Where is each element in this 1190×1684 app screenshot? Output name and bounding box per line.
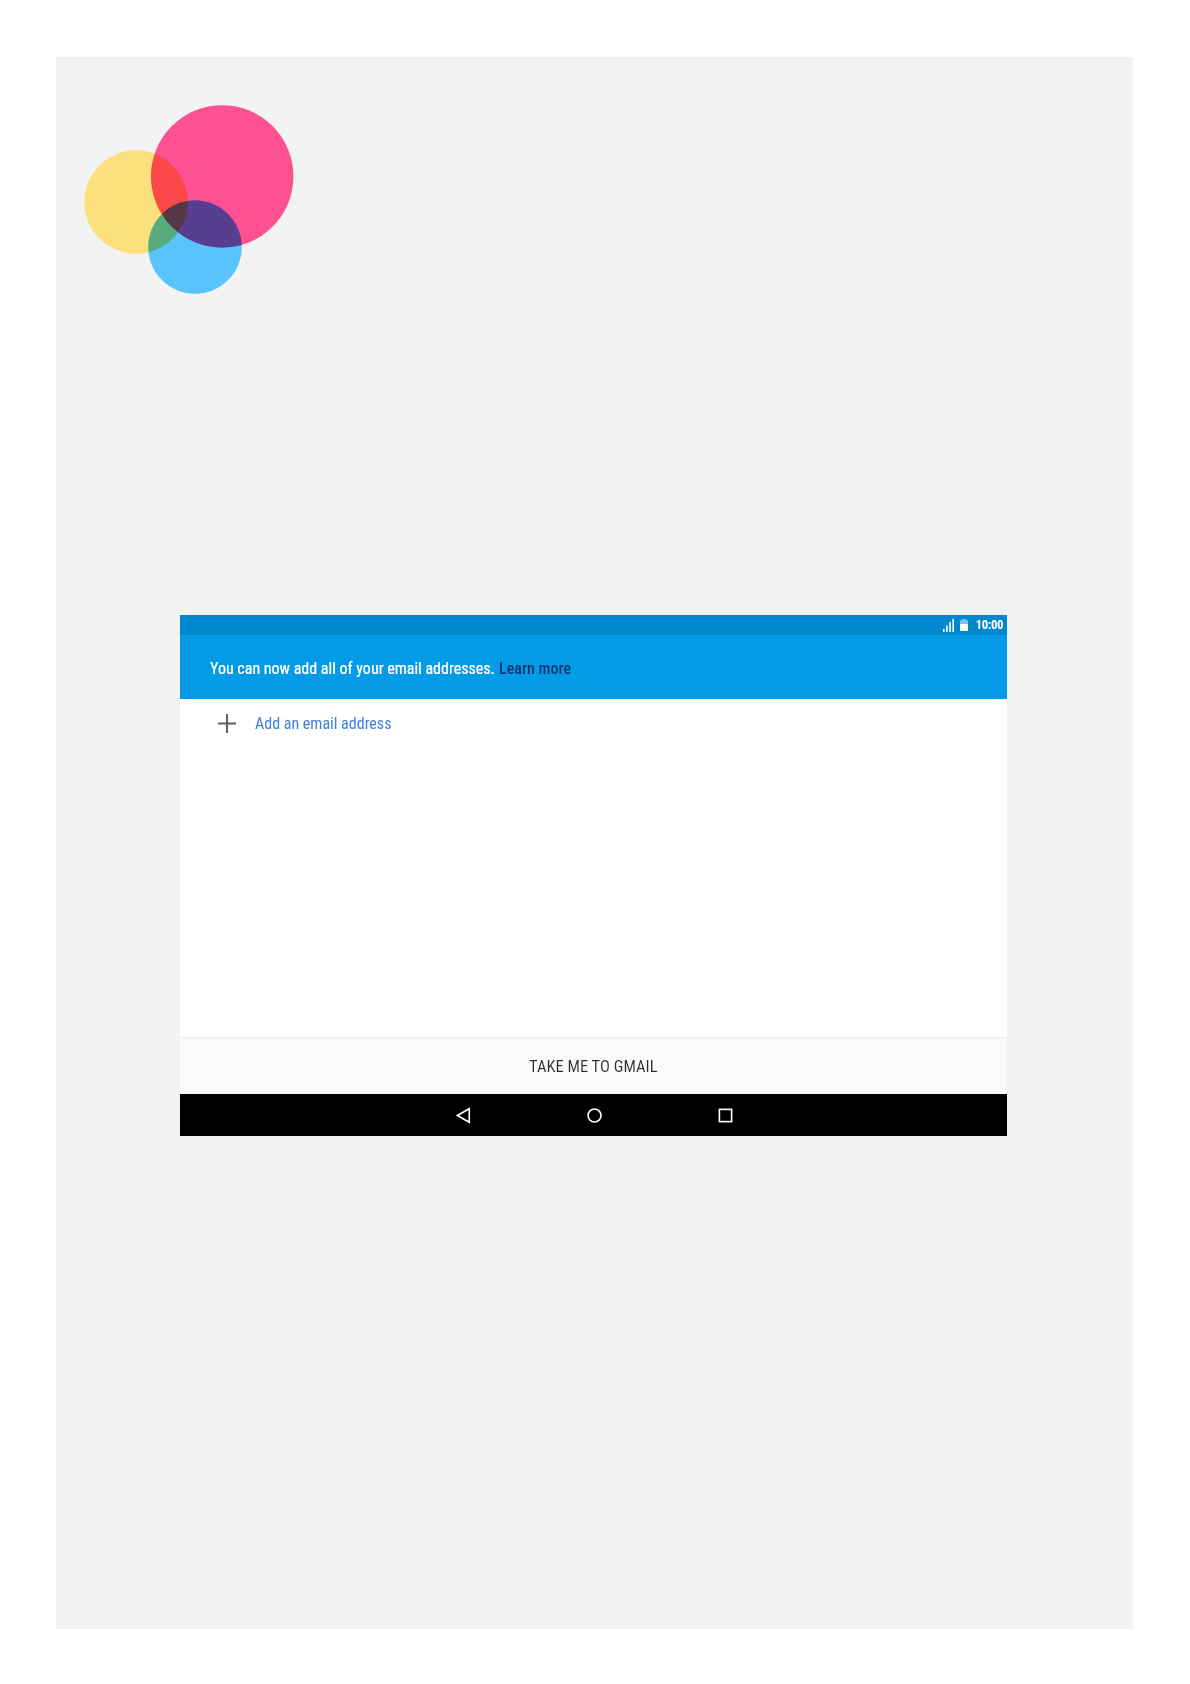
button[interactable]: Back [442, 1094, 484, 1136]
staticText: Add an email address [255, 714, 392, 733]
staticText: You can now add all of your email addres… [210, 659, 499, 678]
staticText: TAKE ME TO GMAIL [529, 1057, 658, 1076]
button[interactable]: Home [573, 1094, 615, 1136]
button[interactable]: TAKE ME TO GMAIL [180, 1038, 1007, 1094]
staticText: 10:00 [976, 618, 1004, 632]
button[interactable]: Add an email address [180, 699, 1007, 753]
button[interactable]: You can now add all of your email addres… [180, 635, 1007, 699]
staticText: Learn more [499, 659, 572, 678]
button[interactable]: Recent apps [704, 1094, 746, 1136]
